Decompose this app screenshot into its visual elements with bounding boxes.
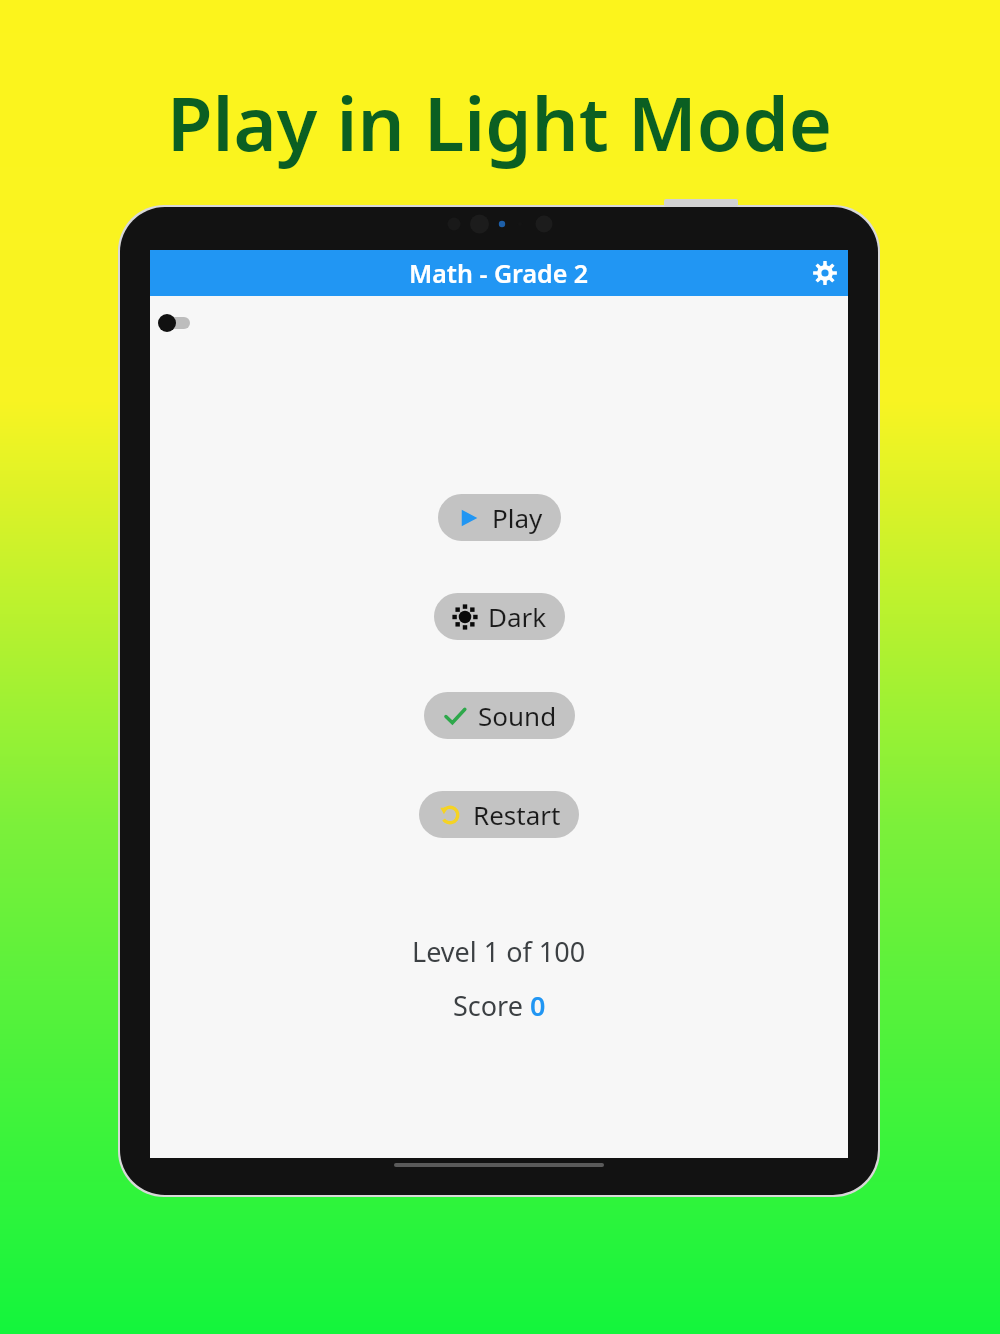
staticText: Level 1 of 100	[412, 933, 586, 970]
staticText: Sound	[478, 698, 557, 733]
button[interactable]: Settings	[802, 250, 848, 296]
button[interactable]: Toggle	[158, 314, 190, 332]
button[interactable]: Sound	[424, 692, 575, 739]
staticText: Play in Light Mode	[167, 72, 833, 173]
staticText: Score 0	[453, 987, 546, 1024]
button[interactable]: Restart	[419, 791, 579, 838]
button[interactable]: Dark	[434, 593, 565, 640]
staticText: Restart	[473, 797, 561, 832]
staticText: Dark	[488, 599, 547, 634]
staticText: Play	[492, 500, 543, 535]
button[interactable]: Play	[438, 494, 561, 541]
staticText: Math - Grade 2	[409, 256, 589, 290]
